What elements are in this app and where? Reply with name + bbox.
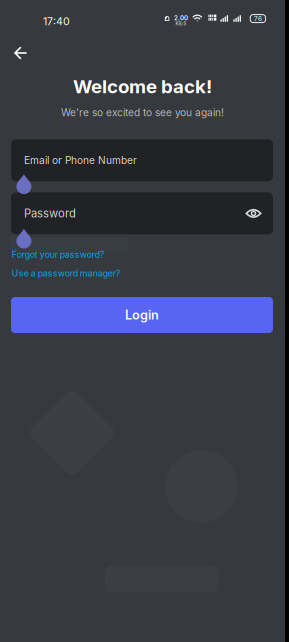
staticText: 2.00 — [174, 14, 188, 22]
staticText: Email or Phone Number — [24, 154, 137, 167]
button[interactable]: Use a password manager? — [12, 267, 120, 279]
button[interactable]: Login — [11, 297, 273, 333]
staticText: Use a password manager? — [12, 268, 120, 279]
staticText: 76 — [254, 15, 262, 22]
button[interactable]: Forgot your password? — [12, 249, 104, 261]
staticText: Forgot your password? — [12, 249, 104, 260]
staticText: 17:40 — [43, 15, 70, 28]
staticText: We're so excited to see you again! — [61, 106, 224, 119]
button[interactable]: Show password — [238, 198, 268, 228]
staticText: Login — [125, 307, 159, 323]
button[interactable]: Back — [0, 36, 40, 70]
staticText: Welcome back! — [73, 75, 212, 98]
staticText: KB/S — [175, 21, 186, 26]
staticText: Password — [24, 207, 76, 220]
